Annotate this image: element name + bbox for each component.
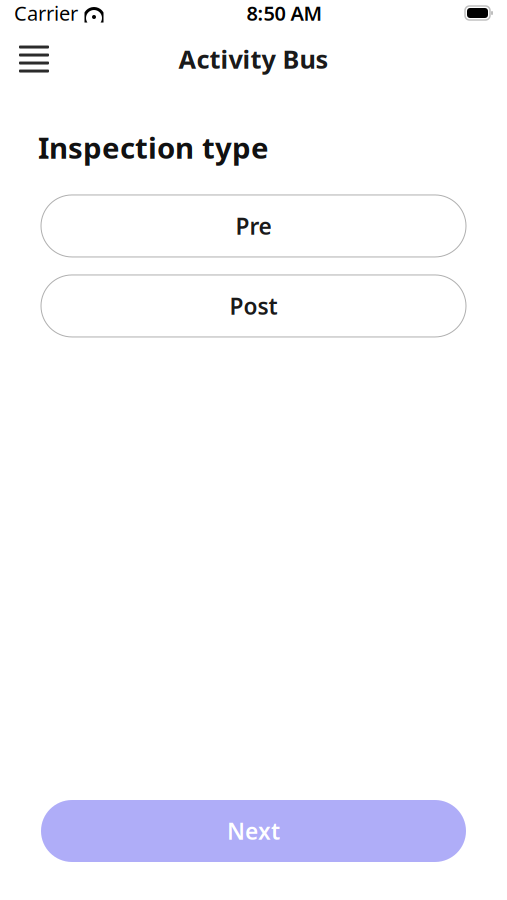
staticText: 8:50 AM — [246, 0, 322, 26]
button[interactable]: Pre — [41, 195, 466, 257]
button[interactable]: Next — [41, 800, 466, 862]
staticText: Inspection type — [38, 128, 269, 167]
staticText: Pre — [235, 211, 271, 241]
button[interactable]: Post — [41, 275, 466, 337]
staticText: Post — [229, 291, 277, 321]
staticText: Next — [227, 816, 280, 846]
staticText: Activity Bus — [178, 42, 328, 76]
button[interactable]: Menu — [12, 37, 56, 81]
staticText: Carrier — [14, 0, 78, 26]
